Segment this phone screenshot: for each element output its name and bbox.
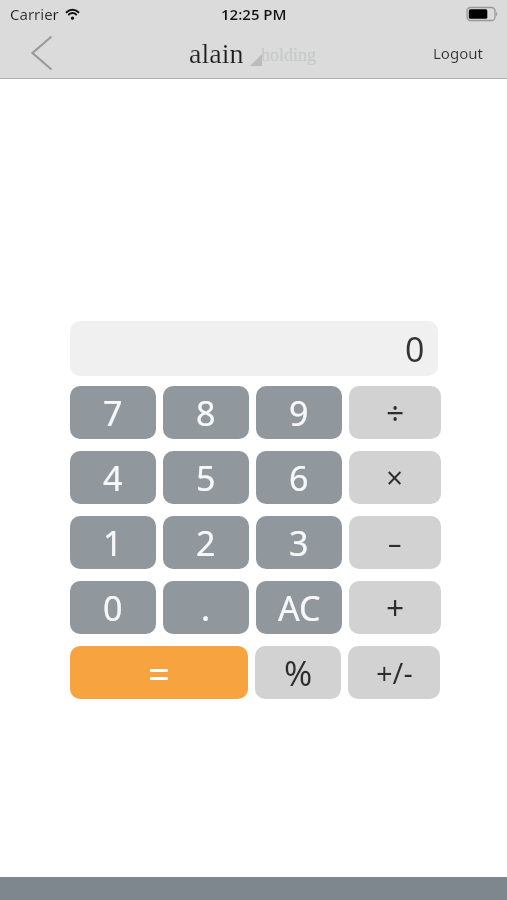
staticText: 8 [196,390,216,436]
staticText: 3 [289,520,309,566]
staticText: 5 [196,455,216,501]
button[interactable]: 9 [256,386,342,439]
staticText: 4 [103,455,123,501]
staticText: alain [189,38,244,69]
staticText: 1 [103,520,123,566]
staticText: 7 [103,390,123,436]
staticText: ÷ [386,391,405,435]
button[interactable]: % [255,646,341,699]
button[interactable]: 2 [163,516,249,569]
button[interactable]: 3 [256,516,342,569]
button[interactable]: 6 [256,451,342,504]
button[interactable] [22,31,62,75]
staticText: + [386,586,405,630]
staticText: % [284,650,313,696]
staticText: 0 [103,585,123,631]
button[interactable]: +/- [348,646,440,699]
staticText: 12:25 PM [221,4,287,24]
staticText: . [201,585,211,631]
button[interactable]: Logout [433,43,483,63]
staticText: 6 [289,455,309,501]
staticText: × [386,457,404,498]
button[interactable]: . [163,581,249,634]
staticText: 2 [196,520,216,566]
staticText: Carrier [10,4,59,24]
button[interactable]: 0 [70,581,156,634]
button[interactable]: × [349,451,441,504]
staticText: 9 [289,390,309,436]
button[interactable]: 5 [163,451,249,504]
button[interactable]: ÷ [349,386,441,439]
button[interactable]: AC [256,581,342,634]
staticText: = [148,647,170,699]
button[interactable]: 1 [70,516,156,569]
button[interactable]: = [70,646,248,699]
staticText: +/- [376,653,413,692]
button[interactable]: – [349,516,441,569]
button[interactable]: + [349,581,441,634]
staticText: Logout [433,43,483,63]
staticText: – [388,524,402,561]
button[interactable]: 7 [70,386,156,439]
staticText: AC [278,585,321,631]
staticText: 0 [405,326,425,372]
staticText: holding [261,45,317,65]
button[interactable]: 4 [70,451,156,504]
button[interactable]: 8 [163,386,249,439]
